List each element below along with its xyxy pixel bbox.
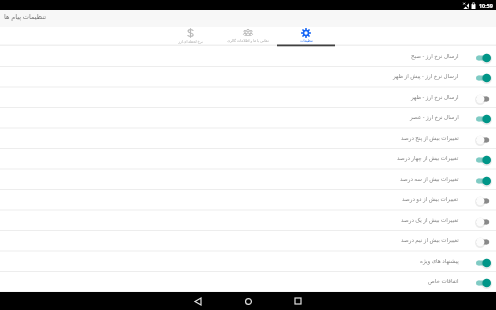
button[interactable]: تنظیمات — [277, 27, 335, 46]
button[interactable]: Home — [223, 292, 273, 310]
staticText: تغییرات بیش از سه درصد — [400, 175, 459, 183]
staticText: تماس با ما و اطلاعات گالری — [227, 38, 269, 43]
button[interactable]: تغییرات بیش از نیم درصد — [0, 231, 496, 252]
button[interactable]: اتفاقات خاص — [0, 272, 496, 293]
staticText: ارسال نرخ ارز - ظهر — [411, 93, 459, 101]
button[interactable]: تغییرات بیش از دو درصد — [0, 190, 496, 211]
staticText: تغییرات بیش از نیم درصد — [401, 236, 459, 244]
staticText: تغییرات بیش از پنج درصد — [401, 134, 459, 142]
button[interactable]: تغییرات بیش از یک درصد — [0, 211, 496, 232]
staticText: ارسال نرخ ارز - پیش از ظهر — [393, 72, 459, 80]
staticText: ارسال نرخ ارز - صبح — [411, 52, 459, 60]
staticText: ارسال نرخ ارز - عصر — [410, 113, 459, 121]
button[interactable]: تغییرات بیش از پنج درصد — [0, 129, 496, 150]
staticText: 10:59 — [479, 2, 493, 9]
staticText: پیشنهاد های ویژه — [420, 257, 459, 265]
staticText: اتفاقات خاص — [428, 277, 459, 285]
staticText: تغییرات بیش از چهار درصد — [397, 154, 459, 162]
button[interactable]: ارسال نرخ ارز - ظهر — [0, 88, 496, 109]
button[interactable]: ارسال نرخ ارز - عصر — [0, 108, 496, 129]
staticText: تنظیمات — [300, 39, 313, 43]
button[interactable]: تغییرات بیش از سه درصد — [0, 170, 496, 191]
button[interactable]: Back — [173, 292, 223, 310]
staticText: نرخ لحظه ای ارز — [178, 39, 203, 44]
staticText: تغییرات بیش از یک درصد — [401, 216, 459, 224]
button[interactable]: ارسال نرخ ارز - صبح — [0, 47, 496, 68]
button[interactable]: Recent apps — [273, 292, 323, 310]
button[interactable]: نرخ لحظه ای ارز — [161, 27, 219, 46]
button[interactable]: ارسال نرخ ارز - پیش از ظهر — [0, 67, 496, 88]
button[interactable]: تماس با ما و اطلاعات گالری — [219, 27, 277, 46]
button[interactable]: پیشنهاد های ویژه — [0, 252, 496, 273]
button[interactable]: تغییرات بیش از چهار درصد — [0, 149, 496, 170]
staticText: تغییرات بیش از دو درصد — [402, 195, 459, 203]
staticText: تنظیمات پیام ها — [4, 12, 47, 21]
